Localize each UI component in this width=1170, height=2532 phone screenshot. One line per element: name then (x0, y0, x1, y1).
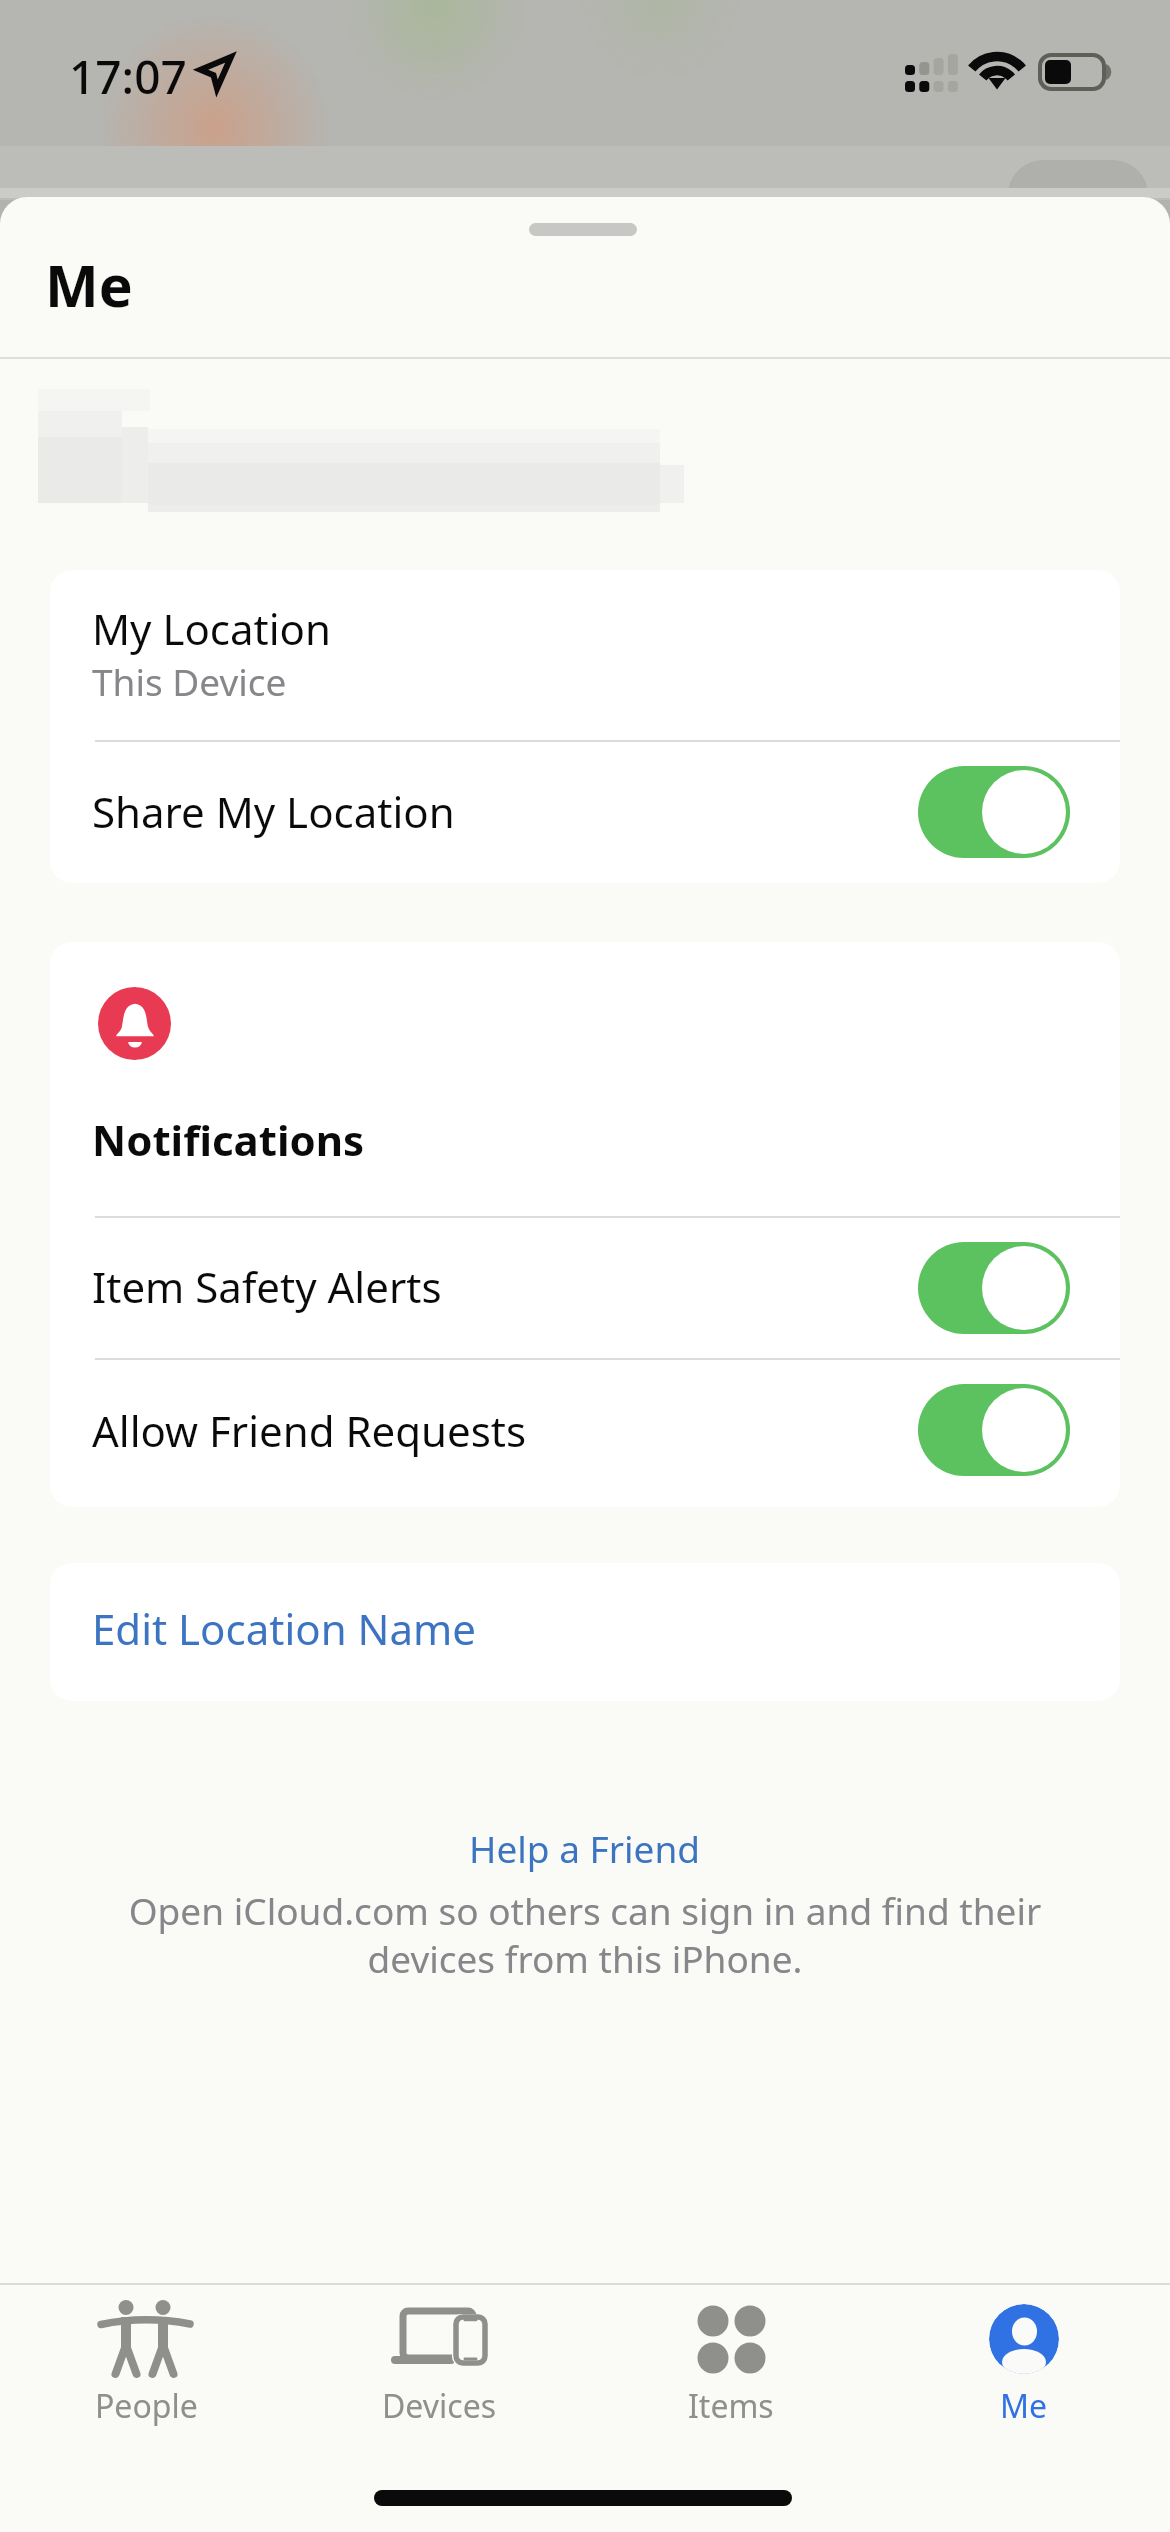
staticText: 17:07 (69, 45, 187, 108)
button[interactable]: Item Safety Alerts (50, 1217, 1120, 1359)
staticText: Open iCloud.com so others can sign in an… (125, 1885, 1045, 1984)
button[interactable]: Share My Location, on (918, 766, 1070, 858)
staticText: Devices (382, 2384, 497, 2428)
staticText: Me (1000, 2384, 1048, 2428)
button[interactable]: Help a Friend (435, 1810, 735, 1876)
staticText: This Device (92, 656, 287, 706)
button[interactable]: Item Safety Alerts, on (918, 1242, 1070, 1334)
button[interactable]: Allow Friend Requests (50, 1359, 1120, 1501)
staticText: People (95, 2384, 198, 2428)
button[interactable]: Allow Friend Requests, on (918, 1384, 1070, 1476)
button[interactable]: Edit Location Name (50, 1563, 1120, 1701)
staticText: My Location (92, 600, 331, 657)
staticText: Edit Location Name (92, 1600, 476, 1657)
button[interactable]: Items (585, 2285, 877, 2435)
staticText: Notifications (92, 1111, 365, 1168)
button[interactable]: Share My Location (50, 741, 1120, 883)
staticText: Items (688, 2384, 774, 2428)
staticText: Help a Friend (469, 1823, 701, 1873)
button[interactable]: Devices (293, 2285, 585, 2435)
button[interactable]: People (0, 2285, 292, 2435)
button[interactable]: My Location (50, 570, 1120, 740)
staticText: Me (45, 246, 133, 324)
button[interactable]: Me (878, 2285, 1170, 2435)
staticText: Share My Location (92, 783, 455, 840)
staticText: Allow Friend Requests (92, 1402, 527, 1459)
staticText: Item Safety Alerts (92, 1258, 442, 1315)
